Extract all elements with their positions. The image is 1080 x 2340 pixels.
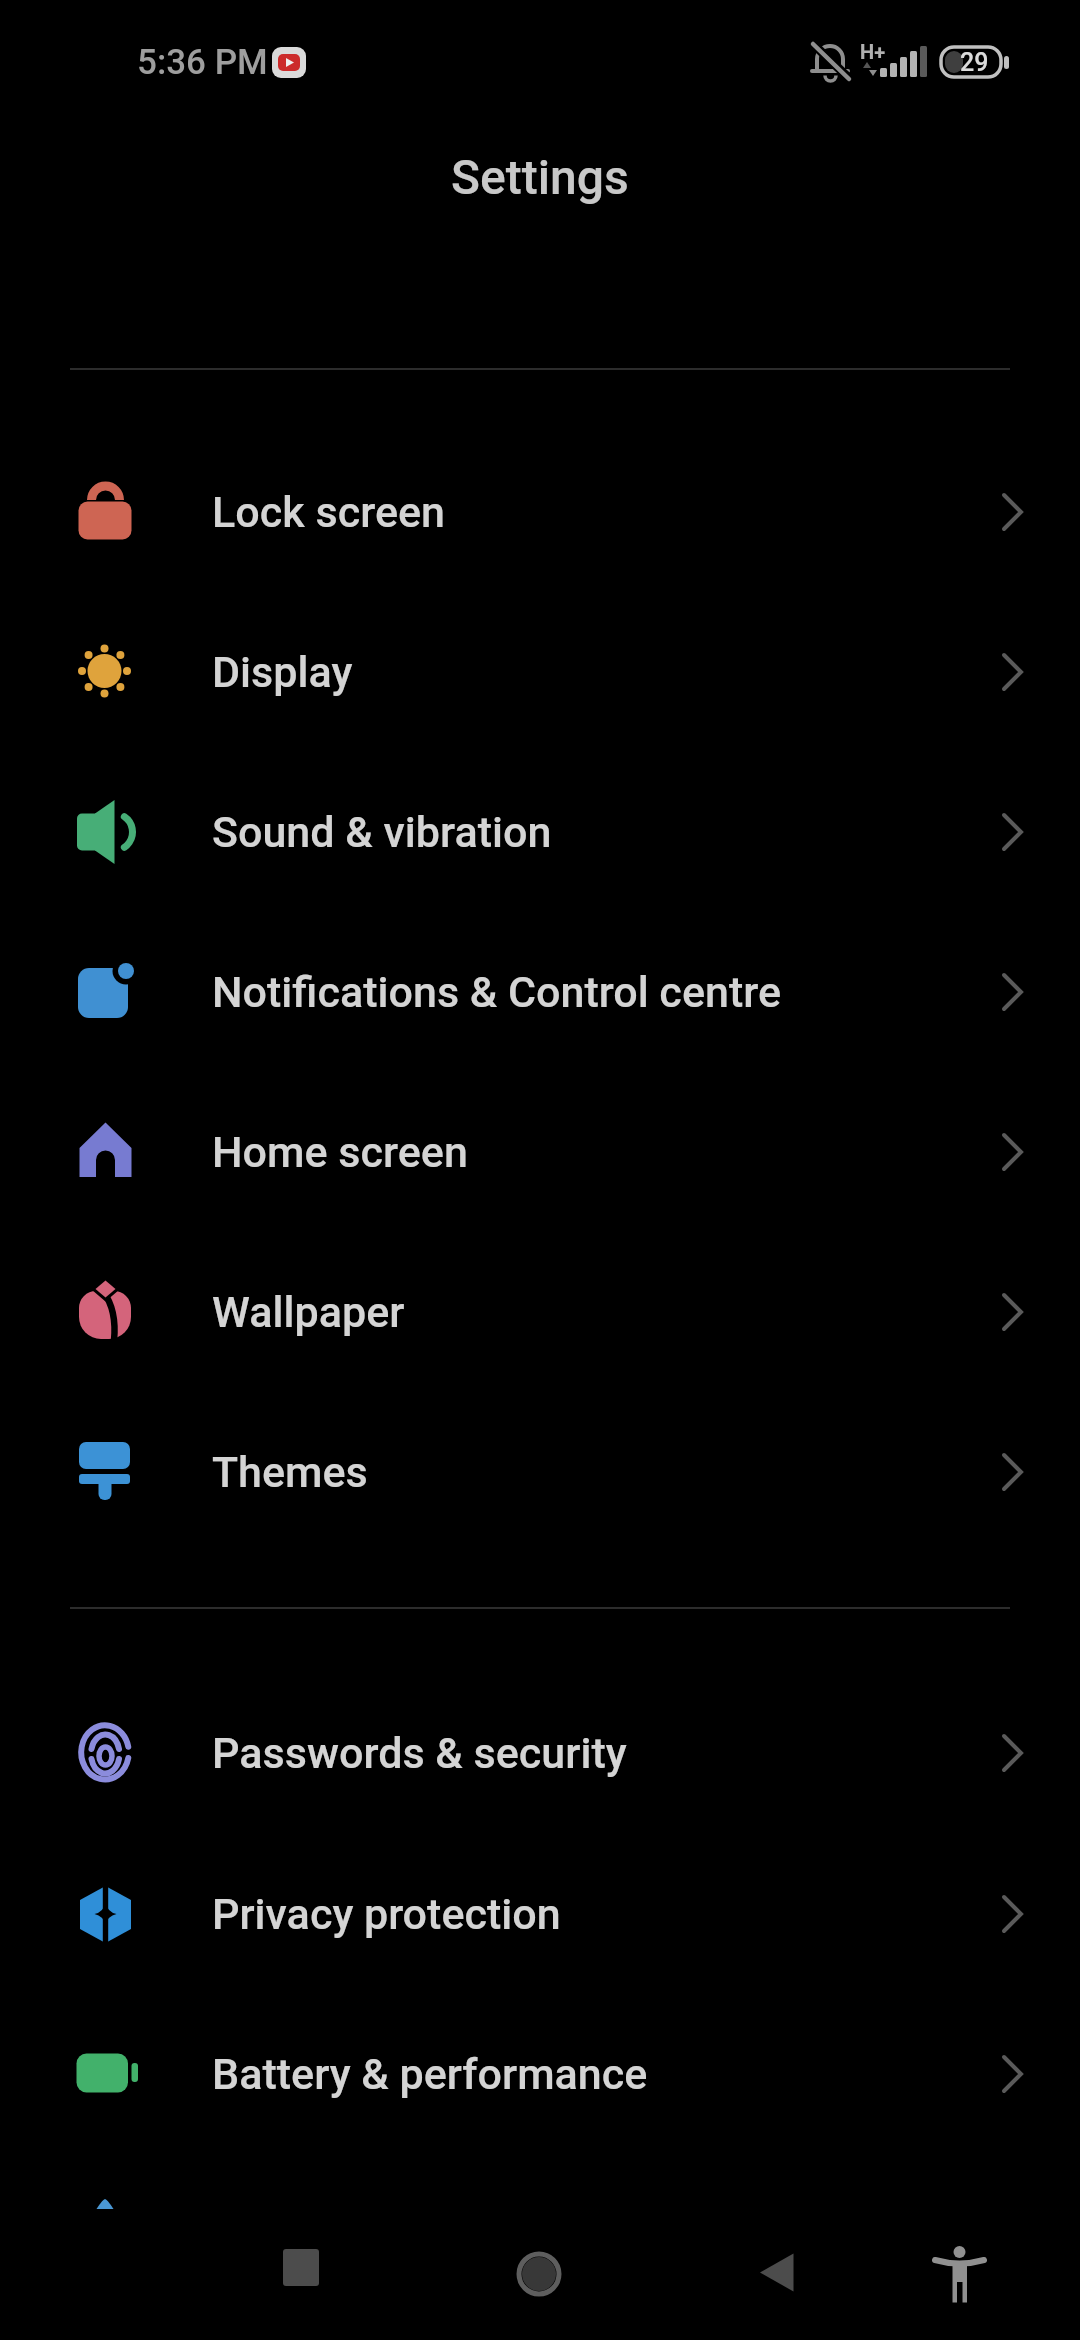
staticText: Sound & vibration	[212, 807, 552, 857]
button[interactable]: Privacy protection	[0, 1834, 1080, 1994]
staticText: Notifications & Control centre	[212, 967, 781, 1017]
staticText: Display	[212, 647, 353, 697]
staticText: Privacy protection	[212, 1889, 561, 1939]
staticText: 5:36 PM	[137, 42, 268, 83]
staticText: Passwords & security	[212, 1728, 627, 1778]
button[interactable]	[480, 2230, 600, 2330]
staticText: Battery & performance	[212, 2049, 648, 2099]
staticText: 29	[960, 48, 989, 76]
button[interactable]: Passwords & security	[0, 1673, 1080, 1833]
staticText: Themes	[212, 1447, 368, 1497]
staticText: Lock screen	[212, 487, 445, 537]
button[interactable]	[720, 2230, 840, 2330]
staticText: Settings	[451, 149, 629, 205]
button[interactable]: Sound & vibration	[0, 752, 1080, 912]
button[interactable]	[900, 2230, 1020, 2330]
button[interactable]: Lock screen	[0, 432, 1080, 592]
button[interactable]	[240, 2230, 360, 2330]
staticText: Home screen	[212, 1127, 468, 1177]
button[interactable]: Wallpaper	[0, 1232, 1080, 1392]
button[interactable]: Battery & performance	[0, 1994, 1080, 2154]
button[interactable]: Display	[0, 592, 1080, 752]
button[interactable]: Home screen	[0, 1072, 1080, 1232]
staticText: H+	[860, 40, 886, 62]
staticText: Wallpaper	[212, 1287, 405, 1337]
button[interactable]: Notifications & Control centre	[0, 912, 1080, 1072]
button[interactable]: Themes	[0, 1392, 1080, 1552]
